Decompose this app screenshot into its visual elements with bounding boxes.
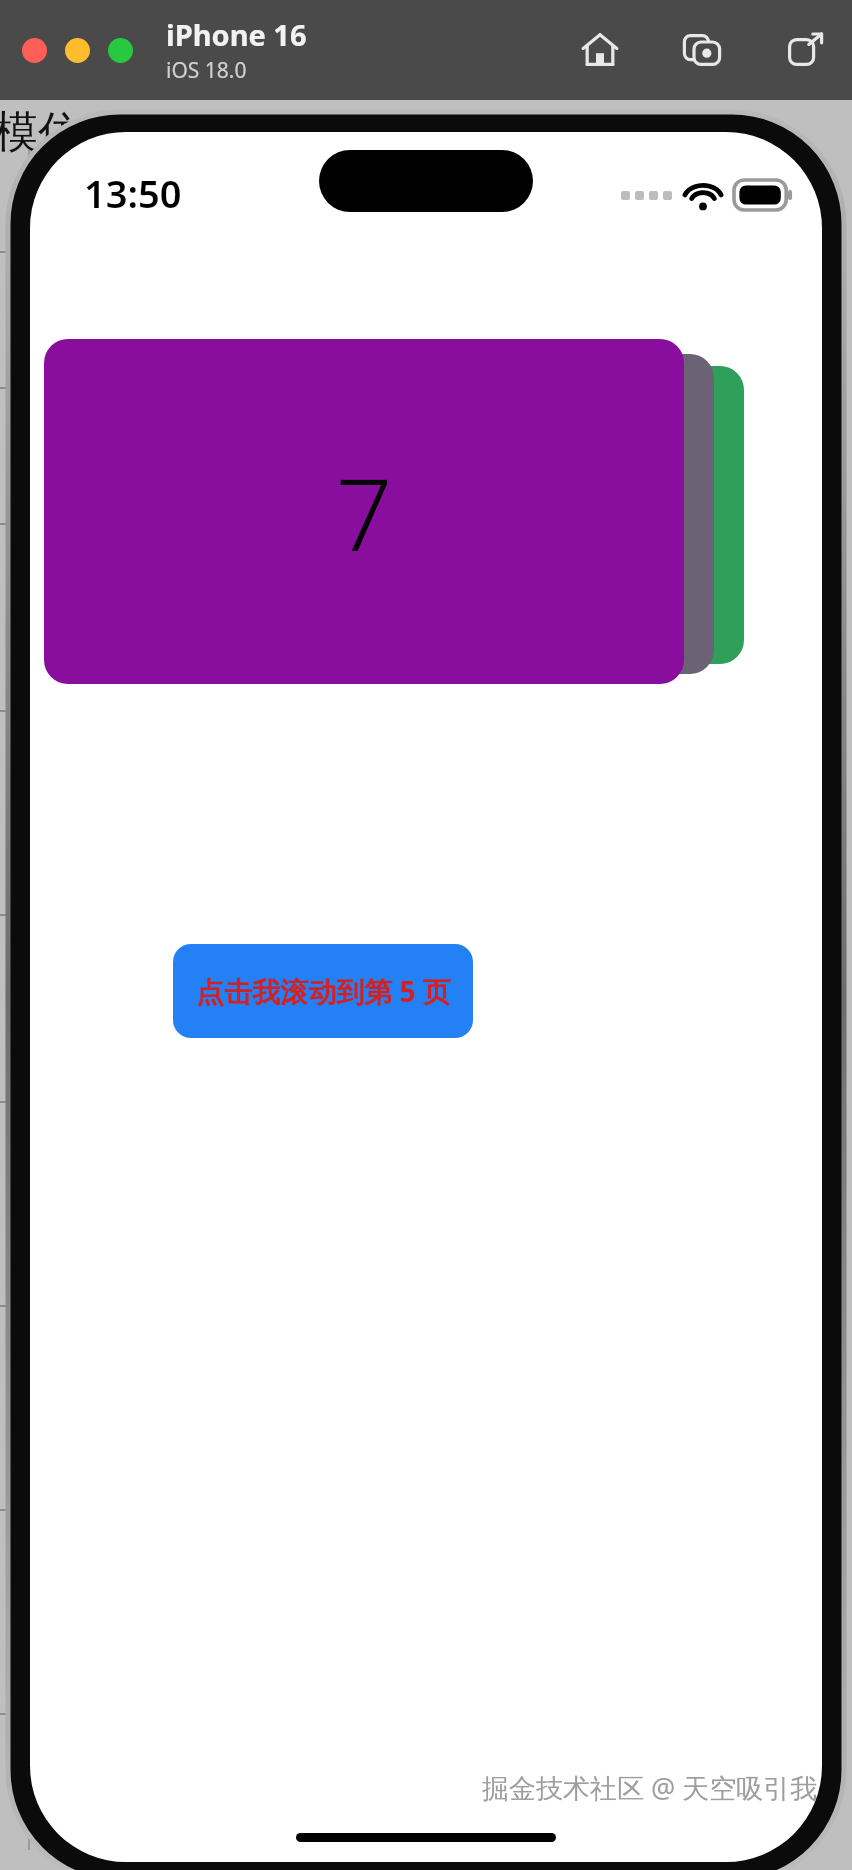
button[interactable]: Screenshot [676,24,728,76]
staticText: iOS 18.0 [166,56,247,85]
button[interactable]: Record screen [778,24,830,76]
staticText: 13:50 [84,167,182,219]
button[interactable]: Zoom [108,38,133,63]
staticText: 点击我滚动到第 5 页 [196,972,451,1010]
button[interactable]: 7 [44,339,684,684]
staticText: 7 [335,444,393,580]
button[interactable]: 点击我滚动到第 5 页 [173,944,473,1038]
button[interactable]: Page 8 [74,354,714,674]
button[interactable]: Home [574,24,626,76]
staticText: iPhone 16 [166,15,307,54]
button[interactable]: Page 9 [104,366,744,664]
button[interactable]: Close [22,38,47,63]
button[interactable]: Minimize [65,38,90,63]
staticText: 模仿了类似 TikTok 点此滑动的竖页效 [0,100,724,160]
staticText: 掘金技术社区 @ 天空吸引我 [482,1769,818,1806]
